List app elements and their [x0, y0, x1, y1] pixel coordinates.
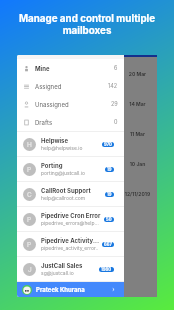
staticText: P [27, 216, 32, 224]
staticText: Porting [41, 162, 63, 169]
staticText: Mine [35, 65, 50, 72]
staticText: 12/11/2019 [121, 191, 154, 197]
staticText: Pipedrive Activity Er.. [41, 237, 100, 244]
staticText: H [27, 141, 32, 149]
staticText: CallRoot Support [41, 187, 91, 194]
staticText: porting@justcall.io [41, 170, 85, 176]
staticText: sg@justcall.io [41, 270, 74, 276]
staticText: JustCall Sales [41, 262, 83, 269]
staticText: help@callroot.com [41, 195, 86, 201]
button[interactable]: J [17, 257, 124, 281]
staticText: P [27, 166, 32, 174]
staticText: Helpwise [41, 137, 69, 144]
staticText: 11 Mar [121, 131, 154, 137]
staticText: 970 [104, 142, 112, 147]
staticText: 14 Mar [121, 101, 154, 107]
button[interactable]: Mine [17, 59, 124, 77]
staticText: 50 [106, 217, 112, 222]
button[interactable]: Unassigned [17, 95, 124, 113]
staticText: pipedrive_activity_error.. [41, 245, 99, 251]
staticText: 1980 [101, 267, 112, 272]
staticText: 142 [108, 83, 118, 90]
staticText: C [27, 191, 32, 199]
staticText: 6 [114, 65, 118, 72]
staticText: pipedrive_errors@helpwi.. [41, 220, 102, 226]
button[interactable]: Assigned [17, 77, 124, 95]
staticText: Manage and control multiple mailboxes [0, 13, 174, 36]
staticText: 20 Mar [121, 71, 154, 77]
button[interactable]: Prateek Khurana [17, 282, 124, 297]
button[interactable]: Drafts [17, 113, 124, 131]
staticText: Prateek Khurana [36, 286, 85, 293]
staticText: P [27, 241, 32, 249]
staticText: Assigned [35, 83, 62, 90]
button[interactable]: P [17, 157, 124, 181]
button[interactable]: H [17, 132, 124, 156]
button[interactable]: P [17, 232, 124, 256]
staticText: 10 Jan [121, 161, 154, 167]
staticText: 19 [107, 167, 112, 172]
staticText: help@helpwise.io [41, 145, 83, 151]
staticText: 29 [111, 101, 118, 108]
staticText: 667 [104, 242, 112, 247]
staticText: Unassigned [35, 101, 69, 108]
staticText: 0 [114, 119, 118, 126]
staticText: J [28, 266, 32, 274]
button[interactable]: C [17, 182, 124, 206]
staticText: Drafts [35, 119, 53, 126]
button[interactable]: P [17, 207, 124, 231]
staticText: 19 [107, 192, 112, 197]
staticText: Pipedrive Cron Error [41, 212, 101, 219]
